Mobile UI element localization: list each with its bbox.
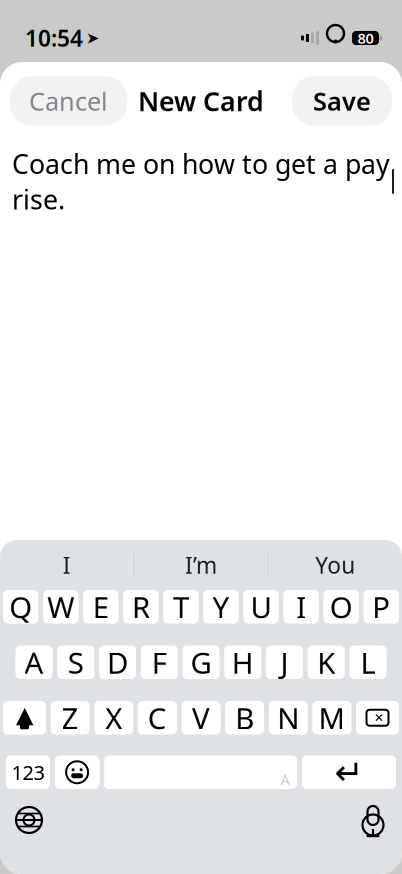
staticText: Q — [9, 587, 32, 626]
staticText: U — [251, 587, 272, 626]
button[interactable]: S — [57, 645, 94, 679]
staticText: 80 — [357, 28, 373, 48]
button[interactable]: C — [138, 701, 177, 734]
staticText: Save — [313, 84, 371, 118]
staticText: I — [63, 550, 71, 580]
button[interactable]: N — [269, 701, 308, 734]
staticText: ➤ — [86, 29, 99, 47]
staticText: C — [148, 698, 167, 737]
staticText: W — [47, 587, 74, 626]
staticText: O — [330, 587, 353, 626]
staticText: T — [173, 587, 189, 626]
button[interactable]: R — [123, 590, 159, 623]
staticText: V — [192, 698, 210, 737]
staticText: New Card — [138, 83, 264, 119]
button[interactable]: T — [163, 590, 199, 623]
staticText: B — [235, 698, 254, 737]
button[interactable]: P — [363, 590, 399, 623]
staticText: S — [68, 643, 84, 682]
staticText: I — [296, 587, 306, 626]
button[interactable]: You — [268, 542, 402, 588]
button[interactable]: X — [94, 701, 133, 734]
button[interactable]: Y — [203, 590, 239, 623]
staticText: D — [107, 643, 128, 682]
staticText: Cancel — [29, 84, 108, 118]
button[interactable]: Emoji — [55, 755, 100, 789]
button[interactable]: Save — [292, 76, 392, 126]
button[interactable]: Space — [104, 755, 297, 789]
button[interactable]: L — [349, 645, 386, 679]
staticText: Coach me on how to get a pay rise. — [12, 146, 390, 217]
button[interactable]: 123 — [6, 755, 50, 789]
button[interactable]: H — [224, 645, 261, 679]
staticText: Z — [62, 698, 79, 737]
staticText: L — [360, 643, 375, 682]
staticText: M — [318, 698, 345, 737]
button[interactable]: U — [243, 590, 279, 623]
staticText: ✕ — [374, 711, 384, 724]
button[interactable]: A — [15, 645, 53, 679]
staticText: X — [105, 698, 122, 737]
button[interactable]: Cancel — [10, 76, 127, 126]
staticText: E — [93, 587, 109, 626]
staticText: I’m — [185, 550, 217, 580]
staticText: H — [232, 643, 254, 682]
button[interactable]: Switch keyboard — [7, 801, 51, 839]
button[interactable]: I’m — [134, 542, 268, 588]
staticText: Y — [212, 587, 229, 626]
staticText: J — [280, 643, 288, 682]
staticText: R — [132, 587, 150, 626]
staticText: A — [280, 769, 289, 789]
button[interactable]: Q — [3, 590, 38, 623]
staticText: N — [277, 698, 299, 737]
button[interactable]: G — [182, 645, 219, 679]
button[interactable]: B — [225, 701, 264, 734]
staticText: G — [190, 643, 211, 682]
staticText: You — [315, 550, 355, 580]
button[interactable]: I — [283, 590, 319, 623]
button[interactable]: O — [323, 590, 359, 623]
button[interactable]: V — [181, 701, 220, 734]
button[interactable]: Delete — [356, 701, 399, 734]
button[interactable]: Dictation — [351, 801, 395, 839]
button[interactable]: M — [312, 701, 351, 734]
button[interactable]: Return — [302, 755, 396, 789]
staticText: 123 — [11, 759, 44, 786]
button[interactable]: K — [308, 645, 345, 679]
button[interactable]: W — [43, 590, 79, 623]
button[interactable]: Shift — [3, 701, 46, 734]
button[interactable]: F — [141, 645, 178, 679]
button[interactable]: I — [0, 542, 134, 588]
staticText: F — [152, 643, 167, 682]
button[interactable]: E — [83, 590, 119, 623]
staticText: ↵ — [334, 753, 363, 792]
button[interactable]: Z — [51, 701, 90, 734]
staticText: A — [25, 643, 44, 682]
button[interactable]: D — [99, 645, 136, 679]
staticText: 10:54 — [25, 23, 83, 53]
button[interactable]: J — [266, 645, 303, 679]
staticText: ▲ — [16, 702, 33, 728]
staticText: K — [317, 643, 335, 682]
staticText: P — [372, 587, 390, 626]
